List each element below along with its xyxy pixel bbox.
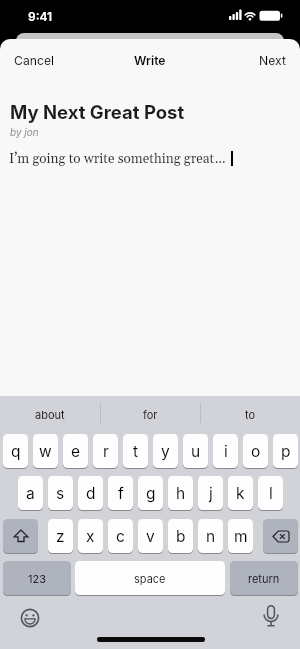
staticText: 9:41: [28, 9, 53, 24]
button[interactable]: c: [108, 519, 133, 553]
button[interactable]: x: [78, 519, 103, 553]
button[interactable]: i: [213, 434, 238, 468]
button[interactable]: [263, 519, 298, 553]
button[interactable]: q: [3, 434, 28, 468]
staticText: u: [191, 442, 201, 461]
staticText: Cancel: [14, 53, 54, 68]
button[interactable]: r: [93, 434, 118, 468]
staticText: s: [56, 484, 65, 503]
button[interactable]: a: [18, 476, 43, 510]
staticText: d: [86, 484, 96, 503]
staticText: i: [224, 442, 228, 461]
button[interactable]: h: [168, 476, 193, 510]
staticText: z: [56, 527, 65, 546]
button[interactable]: l: [258, 476, 283, 510]
staticText: space: [134, 572, 166, 585]
staticText: about: [35, 408, 65, 421]
button[interactable]: [3, 519, 38, 553]
button[interactable]: about: [0, 397, 100, 431]
staticText: Write: [134, 53, 166, 68]
staticText: y: [161, 442, 170, 461]
button[interactable]: return: [230, 561, 298, 595]
staticText: e: [71, 442, 81, 461]
button[interactable]: for: [100, 397, 200, 431]
button[interactable]: b: [168, 519, 193, 553]
staticText: for: [143, 408, 158, 421]
staticText: b: [176, 527, 186, 546]
button[interactable]: s: [48, 476, 73, 510]
staticText: p: [281, 442, 291, 461]
staticText: f: [118, 484, 124, 503]
button[interactable]: Next: [265, 45, 292, 60]
button[interactable]: m: [228, 519, 253, 553]
staticText: I’m going to write something great…: [9, 150, 226, 167]
button[interactable]: u: [183, 434, 208, 468]
staticText: c: [116, 527, 125, 546]
button[interactable]: t: [123, 434, 148, 468]
button[interactable]: k: [228, 476, 253, 510]
button[interactable]: f: [108, 476, 133, 510]
staticText: l: [269, 484, 273, 503]
button[interactable]: to: [200, 397, 300, 431]
staticText: My Next Great Post: [10, 101, 185, 123]
staticText: 123: [28, 572, 46, 585]
button[interactable]: 123: [3, 561, 71, 595]
button[interactable]: space: [75, 561, 225, 595]
button[interactable]: p: [273, 434, 298, 468]
staticText: q: [11, 442, 21, 461]
staticText: k: [236, 484, 245, 503]
staticText: x: [86, 527, 95, 546]
staticText: o: [251, 442, 261, 461]
button[interactable]: Cancel: [8, 45, 48, 60]
button[interactable]: d: [78, 476, 103, 510]
button[interactable]: g: [138, 476, 163, 510]
button[interactable]: y: [153, 434, 178, 468]
staticText: j: [209, 484, 213, 503]
staticText: r: [103, 442, 109, 461]
button[interactable]: [16, 604, 44, 632]
button[interactable]: w: [33, 434, 58, 468]
button[interactable]: [256, 602, 286, 632]
button[interactable]: v: [138, 519, 163, 553]
staticText: return: [248, 572, 280, 585]
staticText: t: [133, 442, 139, 461]
staticText: to: [245, 408, 256, 421]
staticText: m: [234, 527, 248, 546]
staticText: w: [39, 442, 52, 461]
button[interactable]: e: [63, 434, 88, 468]
staticText: n: [206, 527, 216, 546]
staticText: h: [176, 484, 186, 503]
button[interactable]: n: [198, 519, 223, 553]
button[interactable]: z: [48, 519, 73, 553]
staticText: Next: [259, 53, 286, 68]
button[interactable]: o: [243, 434, 268, 468]
button[interactable]: j: [198, 476, 223, 510]
staticText: v: [146, 527, 155, 546]
staticText: g: [146, 484, 156, 503]
staticText: a: [26, 484, 35, 503]
staticText: by jon: [10, 126, 39, 138]
